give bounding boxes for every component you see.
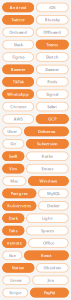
staticText: iOS [49, 5, 55, 10]
staticText: Remote [7, 240, 22, 246]
staticText: Kotlin [41, 153, 53, 159]
button[interactable]: React [24, 251, 69, 260]
staticText: Offboard [43, 29, 61, 35]
staticText: Stripe [9, 290, 21, 295]
button[interactable]: Windows [28, 176, 69, 186]
staticText: Spaces [41, 228, 54, 233]
button[interactable]: Android [2, 3, 34, 12]
button[interactable]: iOS [36, 3, 69, 12]
staticText: Docker [47, 203, 60, 208]
button[interactable]: Vim [2, 164, 24, 173]
button[interactable]: Git [2, 139, 24, 149]
staticText: Git [10, 141, 16, 146]
staticText: Subversion [37, 141, 58, 146]
button[interactable]: Bluesky [36, 15, 69, 25]
button[interactable]: Chrome [2, 102, 34, 111]
staticText: MySQL [47, 191, 60, 196]
staticText: AWS [14, 116, 23, 122]
staticText: Obsidian [43, 265, 61, 270]
staticText: Kubernetes [7, 203, 31, 208]
button[interactable]: Vue [2, 251, 22, 260]
staticText: Dark [9, 215, 18, 221]
staticText: Swift [9, 153, 18, 159]
button[interactable]: Swift [2, 151, 24, 161]
button[interactable]: TikTok [2, 77, 34, 87]
button[interactable]: Subversion [26, 139, 69, 149]
staticText: Light [42, 215, 53, 221]
staticText: Figma [12, 54, 24, 60]
staticText: Twitter [11, 17, 25, 22]
button[interactable]: Figma [2, 52, 34, 62]
staticText: Deliveroo [38, 129, 55, 134]
button[interactable]: Kotlin [26, 151, 69, 161]
button[interactable]: Jira [32, 275, 69, 285]
staticText: Zoomer [45, 67, 59, 72]
button[interactable]: Emacs [26, 164, 69, 173]
button[interactable]: Mac [2, 176, 26, 186]
staticText: Android [10, 5, 27, 10]
button[interactable]: Offboard [36, 27, 69, 37]
button[interactable]: Slack [2, 40, 34, 49]
staticText: Sketch [46, 54, 59, 60]
button[interactable]: PayPal [30, 288, 69, 297]
button[interactable]: Spaces [26, 226, 69, 235]
button[interactable]: Postgres [2, 189, 36, 198]
staticText: Windows [39, 178, 57, 184]
staticText: Slack [14, 42, 23, 47]
button[interactable]: Safari [36, 102, 69, 111]
staticText: Postgres [11, 191, 28, 196]
button[interactable]: Notion [2, 263, 34, 273]
button[interactable]: Teams [36, 40, 69, 49]
staticText: Emacs [41, 166, 53, 171]
button[interactable]: Tabs [2, 226, 24, 235]
staticText: Uber [7, 129, 17, 134]
button[interactable]: Zoomer [36, 65, 69, 74]
staticText: GCP [48, 116, 56, 122]
button[interactable]: Light [26, 213, 69, 223]
button[interactable]: Sketch [36, 52, 69, 62]
staticText: Tabs [9, 228, 18, 233]
button[interactable]: Obsidian [36, 263, 69, 273]
staticText: Safari [47, 104, 57, 109]
staticText: Boomer [11, 67, 26, 72]
button[interactable]: Signal [36, 89, 69, 99]
staticText: React [41, 253, 52, 258]
staticText: Linear [10, 277, 22, 283]
button[interactable]: Boomer [2, 65, 34, 74]
button[interactable]: AWS [2, 114, 34, 124]
button[interactable]: Deliveroo [24, 127, 69, 136]
staticText: Bluesky [45, 17, 60, 22]
button[interactable]: Stripe [2, 288, 28, 297]
button[interactable]: Office [28, 238, 69, 248]
button[interactable]: MySQL [38, 189, 69, 198]
button[interactable]: Dark [2, 213, 24, 223]
button[interactable]: WhatsApp [2, 89, 34, 99]
staticText: Office [43, 240, 54, 246]
staticText: Vue [9, 253, 16, 258]
staticText: WhatsApp [7, 91, 29, 97]
staticText: PayPal [44, 290, 55, 295]
button[interactable]: Linear [2, 275, 30, 285]
button[interactable]: Uber [2, 127, 22, 136]
button[interactable]: Remote [2, 238, 26, 248]
staticText: Notion [12, 265, 25, 270]
button[interactable]: Reels [36, 77, 69, 87]
staticText: TikTok [13, 79, 24, 84]
staticText: Mac [10, 178, 18, 184]
button[interactable]: Twitter [2, 15, 34, 25]
staticText: Reels [47, 79, 57, 84]
button[interactable]: Onboard [2, 27, 34, 37]
staticText: Onboard [9, 29, 27, 35]
staticText: Chrome [10, 104, 26, 109]
staticText: Signal [46, 91, 58, 97]
button[interactable]: GCP [36, 114, 69, 124]
staticText: Vim [9, 166, 17, 171]
staticText: Teams [46, 42, 58, 47]
button[interactable]: Docker [38, 201, 69, 211]
button[interactable]: Kubernetes [2, 201, 36, 211]
staticText: Jira [47, 277, 53, 283]
